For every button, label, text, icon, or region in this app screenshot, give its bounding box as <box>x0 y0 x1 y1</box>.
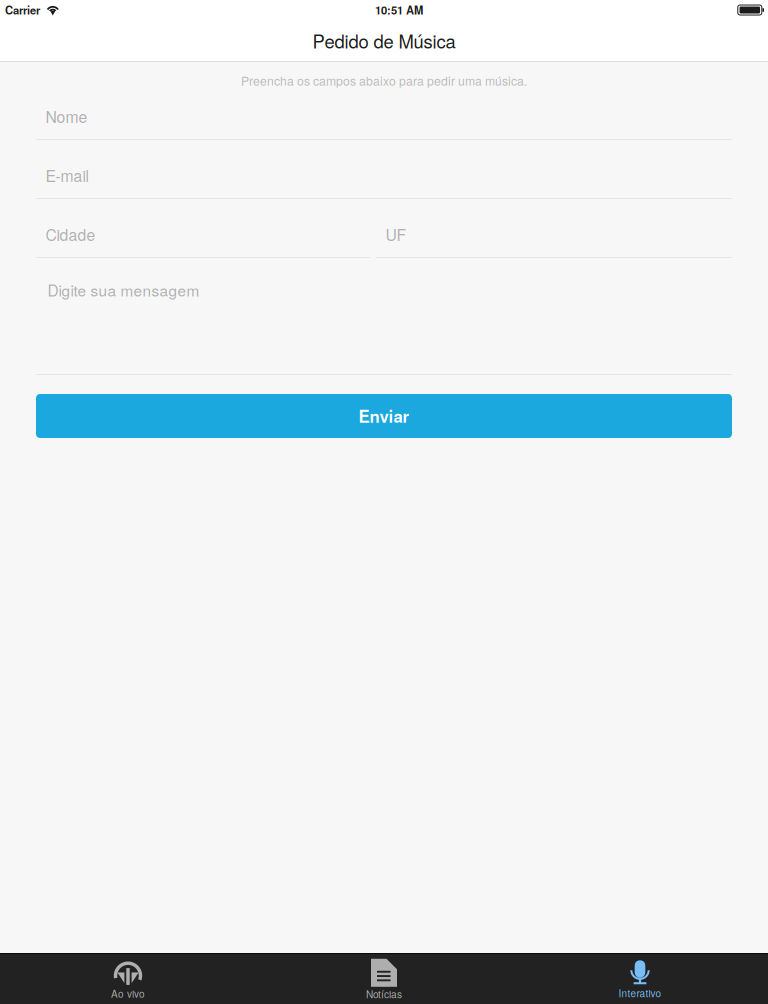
staticText: Interativo <box>618 986 661 1000</box>
staticText: Nome <box>45 105 87 127</box>
button[interactable]: Digite sua mensagem <box>36 258 732 375</box>
staticText: Cidade <box>45 223 95 245</box>
staticText: 10:51 AM <box>375 2 423 18</box>
button[interactable]: UF <box>376 199 732 258</box>
button[interactable]: Notícias <box>256 953 512 1004</box>
staticText: Carrier <box>5 2 40 18</box>
button[interactable]: Ao vivo <box>0 953 256 1004</box>
button[interactable]: Cidade <box>36 199 370 258</box>
staticText: Enviar <box>358 404 409 428</box>
staticText: Preencha os campos abaixo para pedir uma… <box>241 72 527 89</box>
staticText: E-mail <box>45 164 88 186</box>
staticText: Pedido de Música <box>312 27 455 54</box>
staticText: Ao vivo <box>111 986 145 1001</box>
staticText: Notícias <box>366 987 402 1001</box>
button[interactable]: Interativo <box>512 953 768 1004</box>
staticText: UF <box>385 223 406 245</box>
staticText: Digite sua mensagem <box>47 279 199 301</box>
button[interactable]: Enviar <box>36 394 732 438</box>
button[interactable]: Nome <box>36 81 732 140</box>
button[interactable]: E-mail <box>36 140 732 199</box>
